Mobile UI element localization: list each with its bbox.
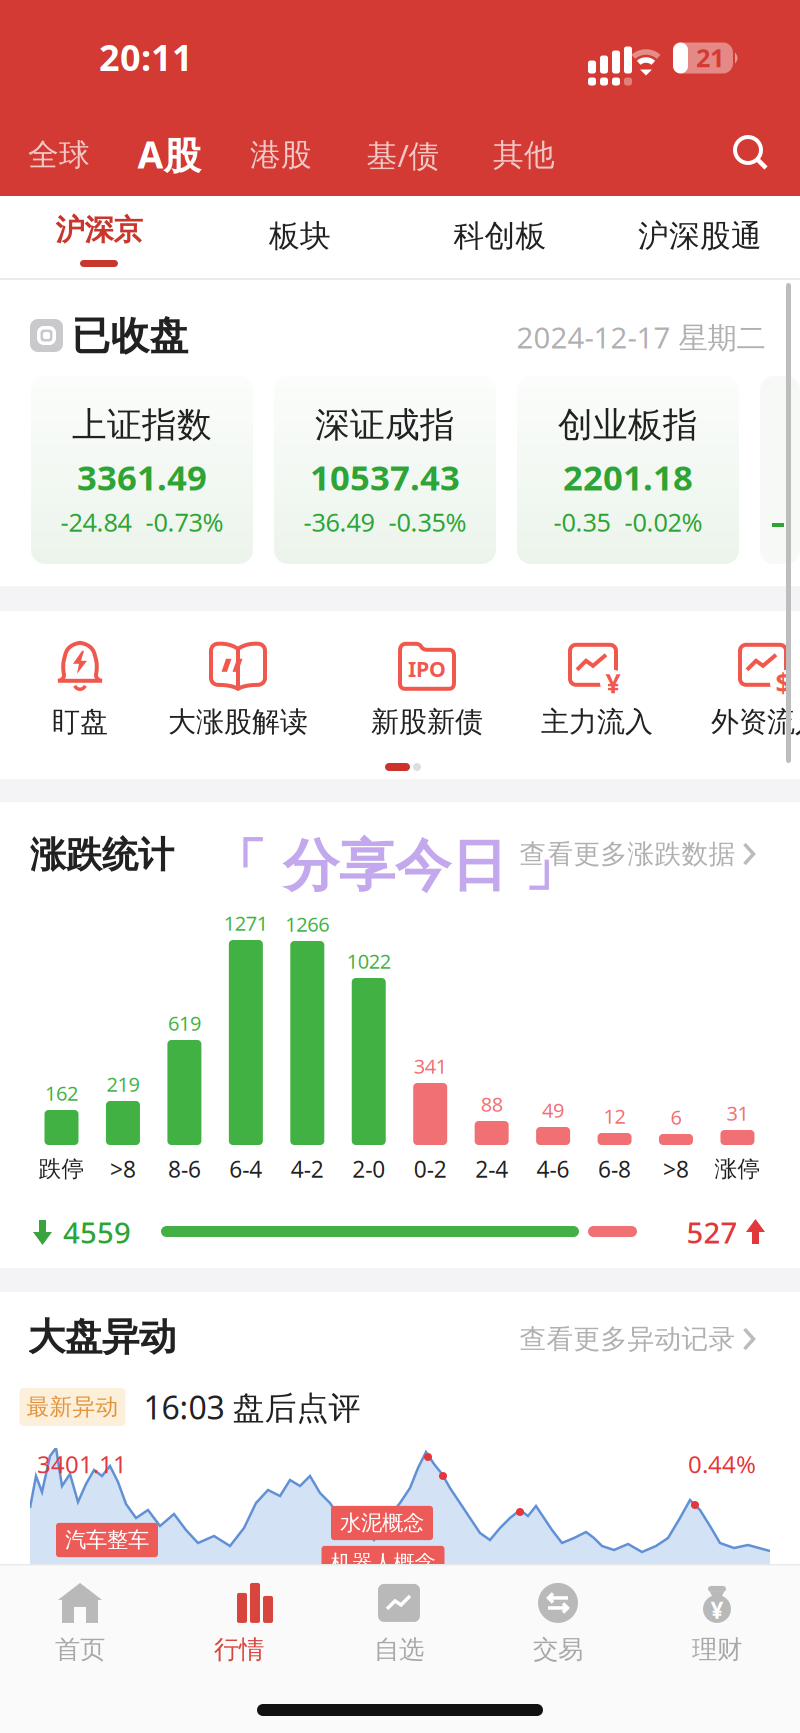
staticText: 板块 xyxy=(269,217,331,255)
staticText: 21 xyxy=(696,41,724,74)
staticText: 全球 xyxy=(28,136,90,174)
staticText: 水泥概念 xyxy=(340,1510,424,1536)
button[interactable]: 首页 xyxy=(15,1572,145,1676)
staticText: 跌停 xyxy=(38,1155,84,1183)
staticText: 创业板指 xyxy=(558,404,698,446)
button[interactable]: 上证指数 xyxy=(31,376,253,564)
button[interactable]: 港股 xyxy=(233,123,329,187)
button[interactable]: 科创板 xyxy=(425,198,575,274)
button[interactable]: 沪深京 xyxy=(29,196,169,276)
staticText: 外资流入 xyxy=(711,705,800,739)
staticText: 341 xyxy=(414,1053,447,1079)
staticText: 港股 xyxy=(250,136,312,174)
button[interactable]: 查看更多异动记录 xyxy=(508,1311,768,1367)
staticText: 基/债 xyxy=(366,135,439,175)
button[interactable]: 自选 xyxy=(334,1572,464,1676)
staticText: ¥ xyxy=(605,665,620,700)
staticText: 0.44% xyxy=(688,1448,756,1480)
staticText: 2024-12-17 星期二 xyxy=(516,317,765,356)
staticText: 6-8 xyxy=(598,1154,631,1184)
staticText: 科创板 xyxy=(453,217,546,255)
staticText: 「 分享今日 」 xyxy=(210,832,580,900)
button[interactable]: 沪深股通 xyxy=(615,198,785,274)
staticText: 沪深京 xyxy=(55,212,142,248)
staticText: 自选 xyxy=(374,1634,424,1665)
staticText: 4-6 xyxy=(537,1154,570,1184)
staticText: 4-2 xyxy=(291,1154,324,1184)
staticText: 1266 xyxy=(285,911,329,937)
staticText: 大盘异动 xyxy=(28,1314,176,1360)
staticText: 最新异动 xyxy=(26,1393,118,1421)
staticText: 「 分享今日 」 xyxy=(212,834,582,903)
button[interactable]: 大涨股解读 xyxy=(153,625,323,751)
staticText: 主力流入 xyxy=(541,705,653,739)
staticText: 涨停 xyxy=(714,1155,760,1183)
button[interactable]: Search xyxy=(724,126,780,182)
staticText: 行情 xyxy=(214,1634,264,1665)
staticText: >8 xyxy=(663,1154,689,1184)
staticText: -0.35 -0.02% xyxy=(553,505,702,539)
staticText: 已收盘 xyxy=(71,312,188,360)
staticText: 首页 xyxy=(55,1634,105,1665)
staticText: 1271 xyxy=(224,910,268,936)
staticText: 8-6 xyxy=(168,1154,201,1184)
staticText: 新股新债 xyxy=(371,705,483,739)
button[interactable]: 深证成指 xyxy=(274,376,496,564)
button[interactable]: A股 xyxy=(119,122,219,186)
staticText: 2-0 xyxy=(352,1154,385,1184)
staticText: 深证成指 xyxy=(315,404,455,446)
staticText: 上证指数 xyxy=(72,404,212,446)
staticText: 盯盘 xyxy=(52,705,108,739)
staticText: 其他 xyxy=(493,136,555,174)
staticText: A股 xyxy=(137,129,200,179)
button[interactable]: ¥ xyxy=(652,1572,782,1676)
staticText: 31 xyxy=(726,1100,748,1126)
staticText: -36.49 -0.35% xyxy=(303,505,466,539)
staticText: 16:03 盘后点评 xyxy=(143,1386,360,1428)
staticText: 6 xyxy=(670,1104,681,1130)
staticText: 2201.18 xyxy=(563,454,693,500)
staticText: 619 xyxy=(168,1010,201,1036)
button[interactable]: ¥ xyxy=(522,625,672,751)
staticText: 3361.49 xyxy=(77,454,207,500)
button[interactable]: 全球 xyxy=(11,123,107,187)
staticText: 49 xyxy=(542,1097,564,1123)
staticText: 「 分享今日 」 xyxy=(208,829,578,898)
staticText: 大涨股解读 xyxy=(168,705,308,739)
button[interactable]: 板块 xyxy=(225,198,375,274)
staticText: 沪深股通 xyxy=(638,217,762,255)
button[interactable]: 创业板指 xyxy=(517,376,739,564)
staticText: IPO xyxy=(408,655,446,683)
staticText: 「 分享今日 」 xyxy=(212,829,582,898)
staticText: 机器人概念 xyxy=(330,1550,435,1576)
staticText: 「 分享今日 」 xyxy=(208,834,578,903)
staticText: 12 xyxy=(604,1103,626,1129)
staticText: 查看更多涨跌数据 xyxy=(519,838,735,870)
staticText: ¥ xyxy=(710,1595,723,1625)
button[interactable]: 交易 xyxy=(493,1572,623,1676)
staticText: $ xyxy=(775,665,790,700)
staticText: 88 xyxy=(481,1091,503,1117)
staticText: 「 分享今日 」 xyxy=(207,832,577,900)
button[interactable]: 其他 xyxy=(476,123,572,187)
staticText: 理财 xyxy=(692,1634,742,1665)
button[interactable]: 最新异动 xyxy=(19,1385,360,1429)
staticText: 527 xyxy=(686,1212,737,1251)
button[interactable]: $ xyxy=(692,625,800,751)
staticText: 6-4 xyxy=(229,1154,262,1184)
button[interactable]: 行情 xyxy=(174,1572,304,1676)
staticText: 0-2 xyxy=(414,1154,447,1184)
staticText: 涨跌统计 xyxy=(30,833,174,877)
staticText: 「 分享今日 」 xyxy=(210,835,580,903)
button[interactable]: 查看更多涨跌数据 xyxy=(508,826,768,882)
staticText: >8 xyxy=(110,1154,136,1184)
staticText: -24.84 -0.73% xyxy=(60,505,223,539)
button[interactable]: 盯盘 xyxy=(15,625,145,751)
button[interactable]: IPO xyxy=(352,625,502,751)
staticText: 20:11 xyxy=(99,33,193,81)
staticText: 4559 xyxy=(63,1212,131,1251)
button[interactable]: 基/债 xyxy=(350,123,456,187)
staticText: 交易 xyxy=(533,1634,583,1665)
staticText: 「 分享今日 」 xyxy=(210,829,580,897)
staticText: 162 xyxy=(45,1080,78,1106)
